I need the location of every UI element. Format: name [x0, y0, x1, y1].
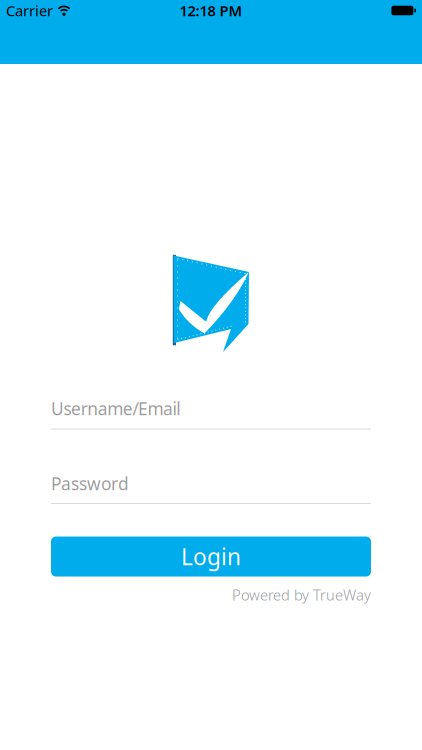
button[interactable]: Username/Email	[51, 397, 371, 429]
staticText: 12:18 PM	[179, 1, 242, 20]
staticText: Login	[181, 541, 241, 572]
button[interactable]: Password	[51, 472, 371, 504]
staticText: Password	[51, 472, 129, 495]
staticText: Carrier	[6, 1, 53, 20]
button[interactable]: Login	[51, 536, 371, 576]
staticText: Powered by TrueWay	[232, 585, 371, 604]
staticText: Username/Email	[51, 397, 180, 420]
